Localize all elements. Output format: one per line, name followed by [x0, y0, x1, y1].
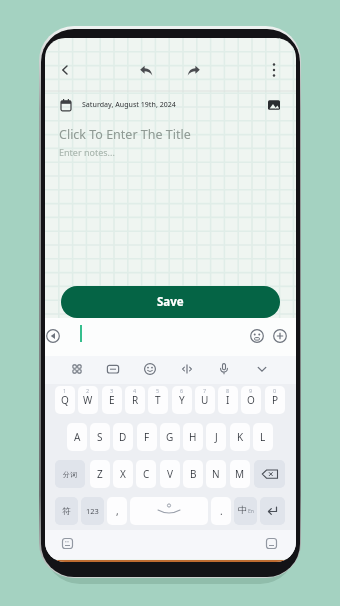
staticText: 3 — [110, 387, 114, 394]
button[interactable]: G — [160, 423, 180, 451]
staticText: Q — [61, 393, 69, 407]
staticText: Saturday, August 19th, 2024 — [82, 100, 176, 110]
staticText: M — [235, 467, 245, 481]
button[interactable] — [217, 362, 231, 376]
staticText: En — [248, 508, 254, 515]
staticText: V — [167, 467, 173, 481]
button[interactable] — [265, 537, 278, 550]
staticText: 0 — [273, 387, 277, 394]
staticText: 9 — [249, 387, 253, 394]
button[interactable]: S — [90, 423, 110, 451]
button[interactable] — [234, 497, 257, 525]
button[interactable]: M — [230, 460, 250, 488]
staticText: 符 — [62, 506, 71, 517]
staticText: 4 — [133, 387, 137, 394]
button[interactable]: N — [206, 460, 226, 488]
button[interactable] — [270, 62, 278, 78]
button[interactable]: C — [136, 460, 156, 488]
button[interactable] — [180, 362, 194, 376]
button[interactable]: 符 — [55, 497, 78, 525]
staticText: G — [166, 430, 174, 444]
button[interactable]: K — [230, 423, 250, 451]
staticText: 2 — [86, 387, 90, 394]
button[interactable]: 4 — [125, 386, 145, 414]
staticText: Enter notes... — [59, 146, 115, 158]
button[interactable]: 5 — [148, 386, 168, 414]
button[interactable] — [186, 65, 201, 78]
staticText: U — [201, 393, 209, 407]
staticText: K — [237, 430, 244, 444]
staticText: T — [155, 393, 161, 407]
staticText: B — [190, 467, 197, 481]
staticText: N — [212, 467, 220, 481]
button[interactable] — [273, 329, 287, 343]
staticText: 8 — [226, 387, 230, 394]
staticText: 7 — [203, 387, 207, 394]
button[interactable] — [46, 329, 60, 343]
staticText: P — [272, 393, 279, 407]
staticText: , — [116, 504, 119, 518]
button[interactable]: A — [67, 423, 87, 451]
staticText: Save — [157, 294, 184, 310]
staticText: S — [97, 430, 103, 444]
button[interactable]: 分词 — [55, 460, 85, 488]
staticText: A — [74, 430, 81, 444]
staticText: X — [120, 467, 126, 481]
button[interactable] — [61, 537, 74, 550]
staticText: E — [109, 393, 115, 407]
button[interactable]: Save — [61, 286, 280, 318]
button[interactable] — [260, 497, 285, 525]
staticText: J — [215, 430, 218, 444]
button[interactable]: 6 — [172, 386, 192, 414]
button[interactable]: L — [253, 423, 273, 451]
staticText: R — [132, 393, 139, 407]
button[interactable]: V — [160, 460, 180, 488]
button[interactable] — [59, 98, 73, 112]
staticText: 1 — [63, 387, 67, 394]
staticText: Z — [97, 467, 103, 481]
button[interactable] — [143, 362, 157, 376]
button[interactable]: 9 — [241, 386, 261, 414]
staticText: F — [144, 430, 150, 444]
button[interactable]: 2 — [78, 386, 98, 414]
button[interactable]: 123 — [81, 497, 104, 525]
staticText: L — [260, 430, 266, 444]
button[interactable]: 8 — [218, 386, 238, 414]
button[interactable]: . — [211, 497, 231, 525]
button[interactable]: 0 — [265, 386, 285, 414]
button[interactable] — [255, 362, 269, 376]
staticText: 中 — [238, 504, 247, 515]
button[interactable]: , — [107, 497, 127, 525]
staticText: 5 — [156, 387, 160, 394]
button[interactable] — [59, 64, 71, 76]
button[interactable] — [254, 460, 285, 488]
staticText: I — [226, 393, 230, 407]
button[interactable]: H — [183, 423, 203, 451]
button[interactable]: 1 — [55, 386, 75, 414]
staticText: 6 — [180, 387, 184, 394]
button[interactable]: 3 — [102, 386, 122, 414]
button[interactable]: Z — [90, 460, 110, 488]
button[interactable]: D — [113, 423, 133, 451]
button[interactable]: J — [206, 423, 226, 451]
button[interactable]: X — [113, 460, 133, 488]
staticText: C — [143, 467, 150, 481]
staticText: Click To Enter The Title — [59, 126, 191, 143]
staticText: . — [220, 504, 223, 518]
staticText: O — [247, 393, 255, 407]
button[interactable] — [106, 362, 120, 376]
staticText: 分词 — [63, 470, 77, 479]
button[interactable]: F — [137, 423, 157, 451]
staticText: 123 — [86, 506, 99, 516]
staticText: Y — [179, 393, 185, 407]
button[interactable] — [70, 362, 84, 376]
button[interactable] — [130, 497, 208, 525]
staticText: W — [83, 393, 93, 407]
button[interactable]: B — [183, 460, 203, 488]
button[interactable] — [250, 329, 264, 343]
staticText: D — [119, 430, 127, 444]
button[interactable]: 7 — [195, 386, 215, 414]
staticText: H — [189, 430, 197, 444]
button[interactable] — [267, 98, 281, 112]
button[interactable] — [139, 65, 154, 78]
